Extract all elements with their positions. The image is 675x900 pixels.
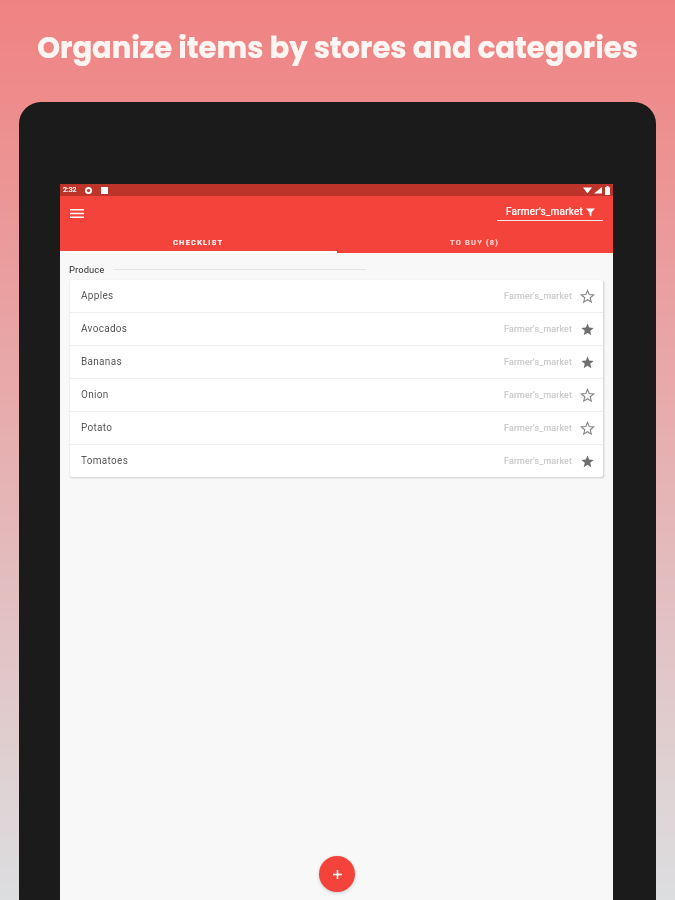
staticText: Avocados [81, 323, 128, 335]
button[interactable]: Add item [319, 856, 355, 892]
button[interactable]: Unmark favourite [579, 354, 595, 370]
button[interactable]: Farmer's_market [497, 206, 603, 221]
button[interactable]: CHECKLIST [60, 229, 336, 253]
staticText: Onion [81, 389, 109, 401]
button[interactable]: Potato [70, 412, 603, 444]
button[interactable]: Unmark favourite [579, 321, 595, 337]
staticText: Farmer's_market [504, 456, 573, 466]
staticText: 2:32 [63, 186, 77, 194]
button[interactable]: TO BUY (8) [336, 229, 613, 253]
staticText: Farmer's_market [504, 390, 573, 400]
button[interactable]: Mark favourite [579, 420, 595, 436]
staticText: Farmer's_market [506, 206, 583, 218]
button[interactable]: Unmark favourite [579, 453, 595, 469]
staticText: Potato [81, 422, 113, 434]
staticText: CHECKLIST [173, 238, 224, 247]
button[interactable]: Open navigation menu [66, 202, 88, 224]
staticText: Organize items by stores and categories [0, 28, 675, 69]
button[interactable]: Apples [70, 280, 603, 312]
staticText: Farmer's_market [504, 423, 573, 433]
staticText: TO BUY (8) [450, 238, 500, 247]
button[interactable]: Avocados [70, 313, 603, 345]
button[interactable]: Onion [70, 379, 603, 411]
button[interactable]: Tomatoes [70, 445, 603, 477]
button[interactable]: Bananas [70, 346, 603, 378]
staticText: Farmer's_market [504, 357, 573, 367]
button[interactable]: Mark favourite [579, 387, 595, 403]
staticText: Bananas [81, 356, 122, 368]
staticText: Farmer's_market [504, 291, 573, 301]
button[interactable]: Mark favourite [579, 288, 595, 304]
staticText: Apples [81, 290, 114, 302]
staticText: Tomatoes [81, 455, 129, 467]
staticText: Produce [69, 264, 105, 275]
staticText: Farmer's_market [504, 324, 573, 334]
